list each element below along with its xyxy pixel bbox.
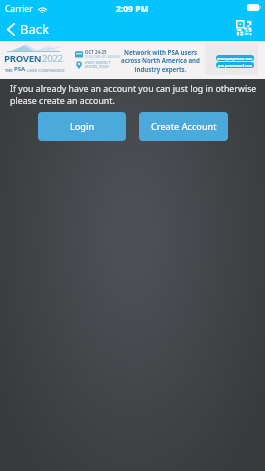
- staticText: THE: [5, 68, 14, 73]
- button[interactable]: Scan QR code: [236, 20, 252, 36]
- staticText: Carrier: [5, 3, 33, 15]
- button[interactable]: Login: [38, 112, 126, 141]
- staticText: Login: [70, 120, 95, 133]
- staticText: AUSTIN, TEXAS: [85, 65, 109, 69]
- staticText: OCT 24-25: [85, 49, 107, 55]
- staticText: PSA: [14, 65, 26, 73]
- staticText: 2 FULL DAYS OF LEARNING: [85, 55, 121, 59]
- button[interactable]: Back: [7, 20, 49, 38]
- staticText: 2022: [42, 52, 63, 65]
- button[interactable]: www.psaproven.com: [216, 55, 254, 61]
- staticText: psa.provenconf.com: [218, 63, 253, 68]
- button[interactable]: Create Account: [139, 112, 228, 141]
- staticText: www.psaproven.com: [217, 56, 253, 61]
- staticText: If you already have an account you can j…: [10, 83, 261, 106]
- staticText: PROVEN: [4, 52, 42, 65]
- button[interactable]: PROVEN: [0, 41, 265, 79]
- staticText: 2:09 PM: [116, 3, 149, 15]
- staticText: Network with PSA users across North Amer…: [121, 48, 200, 74]
- button[interactable]: psa.provenconf.com: [216, 62, 254, 68]
- staticText: HYATT REGENCY: [85, 61, 111, 65]
- staticText: Create Account: [151, 120, 217, 133]
- staticText: Back: [20, 20, 49, 38]
- staticText: USER CONFERENCE: [26, 68, 65, 73]
